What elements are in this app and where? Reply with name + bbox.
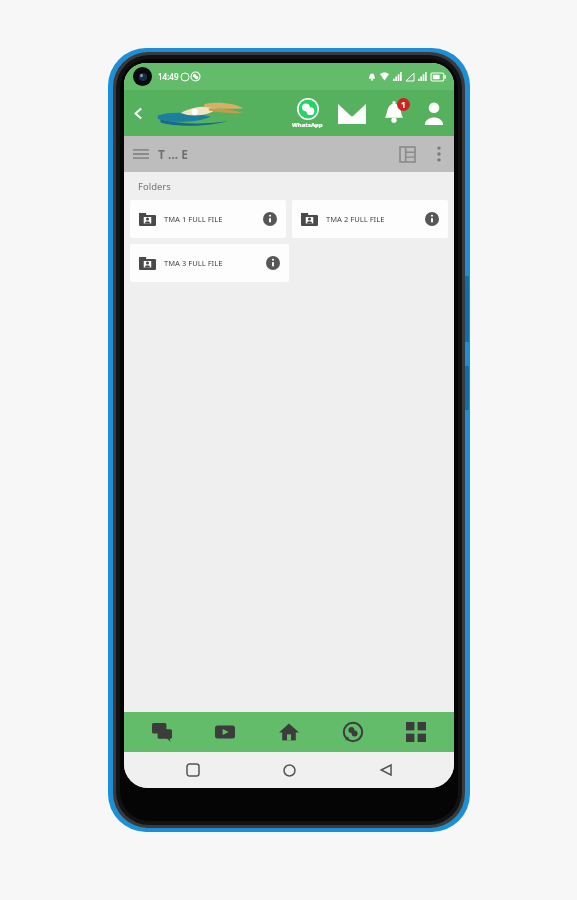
button[interactable]: Recents: [165, 752, 221, 788]
staticText: TMA 1 FULL FILE: [164, 214, 263, 224]
button[interactable]: TMA 2 FULL FILE: [292, 200, 448, 238]
button[interactable]: Info: [425, 212, 439, 226]
button[interactable]: Logo: [152, 90, 248, 136]
button[interactable]: Mail: [330, 90, 374, 136]
button[interactable]: Chats: [136, 712, 188, 752]
button[interactable]: TMA 3 FULL FILE: [130, 244, 289, 282]
button[interactable]: TMA 1 FULL FILE: [130, 200, 286, 238]
staticText: TMA 3 FULL FILE: [164, 258, 266, 268]
button[interactable]: Profile: [414, 90, 454, 136]
button[interactable]: WhatsApp: [327, 712, 379, 752]
staticText: T ... E: [158, 146, 189, 162]
staticText: 14:49: [158, 71, 179, 82]
button[interactable]: Home: [261, 752, 317, 788]
button[interactable]: Home: [263, 712, 315, 752]
button[interactable]: Apps: [390, 712, 442, 752]
staticText: WhatsApp: [292, 121, 323, 129]
button[interactable]: Menu: [124, 136, 158, 172]
staticText: TMA 2 FULL FILE: [326, 214, 425, 224]
button[interactable]: More options: [424, 136, 454, 172]
staticText: Folders: [138, 180, 171, 193]
button[interactable]: Notifications: [374, 90, 414, 136]
button[interactable]: Switch view: [390, 136, 424, 172]
staticText: 1: [401, 99, 406, 110]
button[interactable]: Videos: [199, 712, 251, 752]
button[interactable]: Info: [263, 212, 277, 226]
button[interactable]: Info: [266, 256, 280, 270]
button[interactable]: Back: [124, 90, 152, 136]
button[interactable]: WhatsApp: [284, 90, 330, 136]
button[interactable]: Back: [358, 752, 414, 788]
